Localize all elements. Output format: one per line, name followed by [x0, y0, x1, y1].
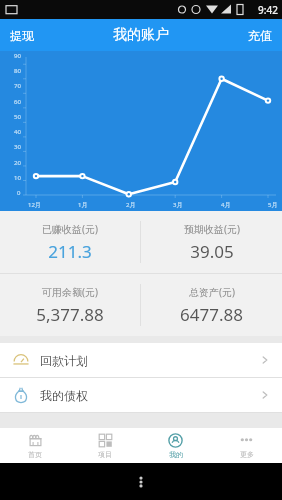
staticText: 211.3: [48, 240, 92, 263]
staticText: 更多: [240, 450, 254, 459]
staticText: 5,377.88: [36, 303, 104, 326]
button[interactable]: 更多: [211, 428, 282, 463]
button[interactable]: 已赚收益(元): [0, 211, 140, 273]
staticText: 6477.88: [180, 303, 243, 326]
staticText: 5月: [268, 201, 278, 209]
staticText: 我的: [169, 450, 183, 459]
staticText: 90: [14, 52, 21, 60]
staticText: 12月: [28, 201, 41, 209]
staticText: 10: [14, 174, 21, 182]
button[interactable]: 可用余额(元): [0, 274, 140, 336]
staticText: 总资产(元): [189, 285, 235, 299]
staticText: 项目: [98, 450, 112, 459]
staticText: 3月: [173, 201, 183, 209]
staticText: 回款计划: [40, 353, 88, 368]
staticText: 39.05: [190, 240, 234, 263]
staticText: 0: [17, 189, 21, 197]
staticText: 可用余额(元): [42, 285, 98, 299]
staticText: 80: [14, 67, 21, 75]
staticText: 50: [14, 113, 21, 121]
staticText: 40: [14, 128, 21, 136]
staticText: 已赚收益(元): [42, 222, 98, 236]
staticText: 我的债权: [40, 388, 88, 403]
staticText: 预期收益(元): [184, 222, 240, 236]
button[interactable]: 首页: [0, 428, 70, 463]
staticText: 1月: [78, 201, 88, 209]
button[interactable]: 提现: [0, 22, 44, 49]
button[interactable]: 我的债权: [0, 378, 282, 412]
staticText: 20: [14, 159, 21, 167]
staticText: 70: [14, 82, 21, 90]
staticText: 30: [14, 143, 21, 151]
button[interactable]: 预期收益(元): [141, 211, 282, 273]
button[interactable]: 总资产(元): [141, 274, 282, 336]
staticText: 首页: [28, 450, 42, 459]
button[interactable]: 我的: [140, 428, 211, 463]
staticText: 充值: [248, 28, 272, 43]
button[interactable]: 回款计划: [0, 343, 282, 377]
staticText: 我的账户: [113, 26, 169, 44]
staticText: 60: [14, 98, 21, 106]
staticText: 4月: [221, 201, 231, 209]
button[interactable]: 项目: [70, 428, 140, 463]
staticText: 2月: [126, 201, 136, 209]
staticText: 9:42: [258, 3, 278, 17]
staticText: 提现: [10, 28, 34, 43]
button[interactable]: 充值: [238, 22, 282, 49]
